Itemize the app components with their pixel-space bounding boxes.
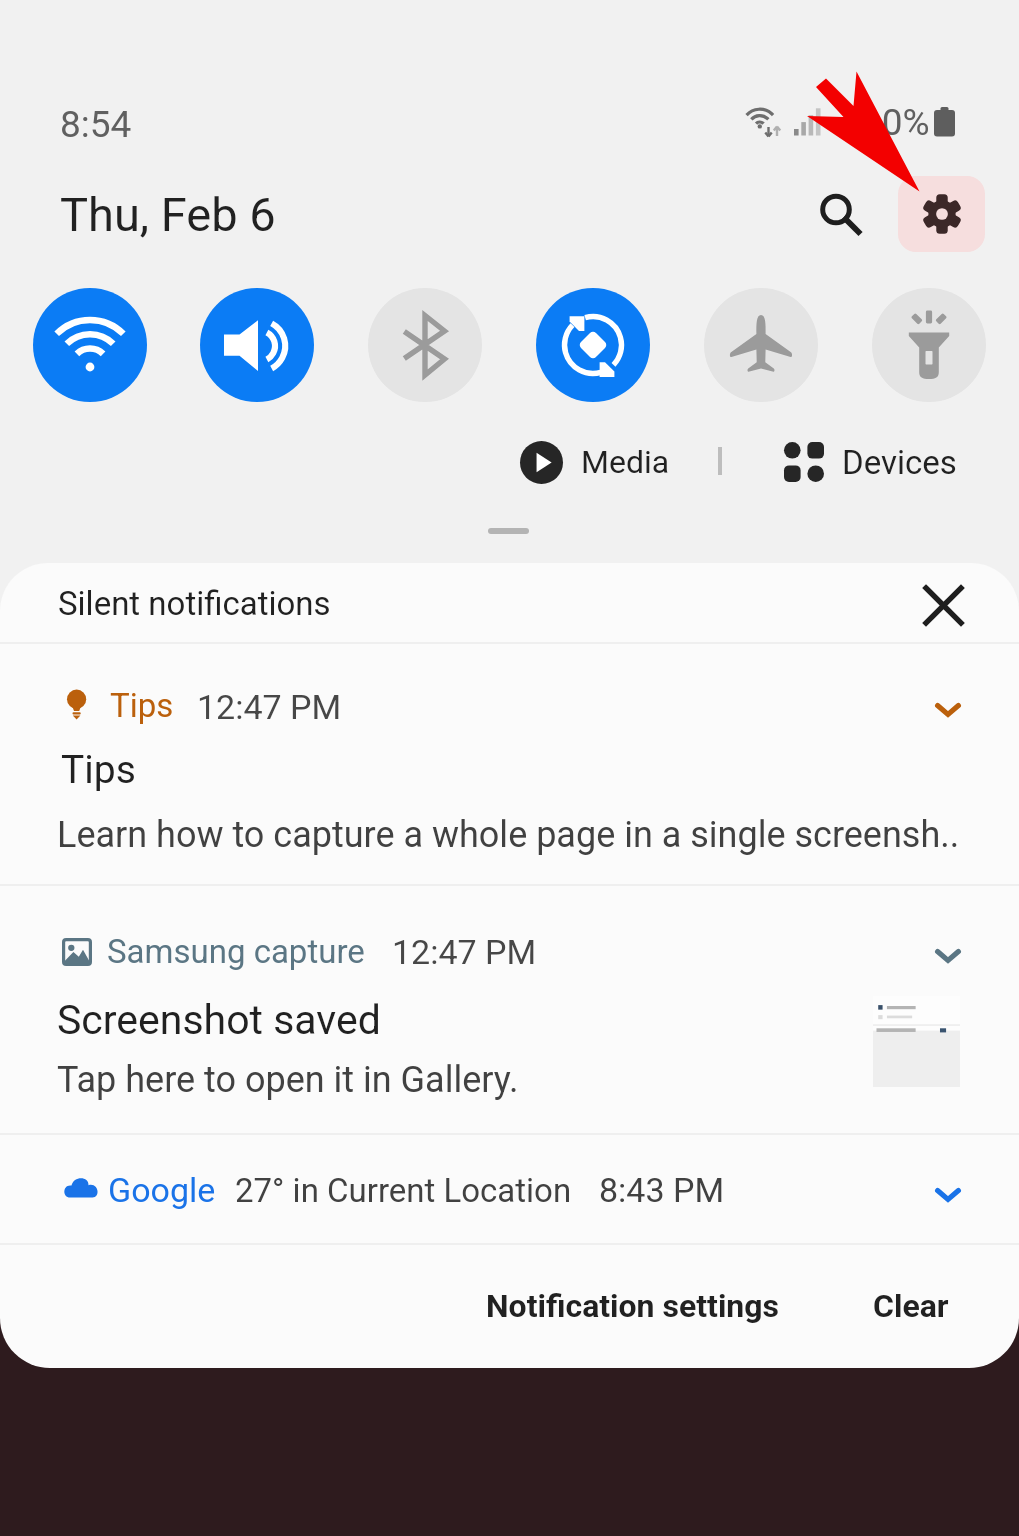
button[interactable]: Auto rotate [536, 288, 650, 402]
button[interactable]: Devices [768, 428, 973, 496]
button[interactable]: Notification settings [462, 1266, 802, 1346]
button[interactable]: Dismiss silent notifications [906, 568, 980, 642]
button[interactable]: Google weather notification [0, 1135, 1019, 1243]
button[interactable]: Expand notification [916, 678, 980, 742]
staticText: 27° in Current Location [235, 1171, 572, 1210]
button[interactable]: Sound [200, 288, 314, 402]
staticText: 12:47 PM [197, 687, 342, 727]
button[interactable]: Settings [898, 176, 985, 252]
button[interactable]: Tips notification [0, 644, 1019, 884]
staticText: 8:54 [60, 103, 132, 146]
button[interactable]: Airplane mode [704, 288, 818, 402]
staticText: Tap here to open it in Gallery. [57, 1059, 519, 1101]
button[interactable]: Search [796, 170, 884, 258]
staticText: Learn how to capture a whole page in a s… [57, 814, 960, 856]
button[interactable]: Flashlight [872, 288, 986, 402]
staticText: 12:47 PM [392, 932, 537, 972]
button[interactable]: Media [504, 428, 686, 496]
button[interactable]: Bluetooth [368, 288, 482, 402]
staticText: Notification settings [486, 1287, 779, 1325]
staticText: Devices [842, 443, 957, 482]
button[interactable]: Expand notification [916, 924, 980, 988]
button[interactable]: Clear [847, 1266, 989, 1346]
staticText: Clear [873, 1287, 949, 1325]
staticText: Screenshot saved [57, 996, 381, 1044]
button[interactable]: Screenshot saved notification [0, 886, 1019, 1133]
staticText: Google [108, 1170, 216, 1210]
staticText: Media [581, 443, 670, 481]
button[interactable]: Expand notification [916, 1163, 980, 1227]
staticText: 8:43 PM [599, 1170, 725, 1210]
staticText: Thu, Feb 6 [60, 187, 276, 242]
button[interactable]: Wi-Fi [33, 288, 147, 402]
staticText: 10% [861, 101, 930, 144]
staticText: Samsung capture [107, 932, 365, 971]
staticText: Tips [61, 747, 136, 793]
staticText: Tips [110, 686, 174, 725]
staticText: Silent notifications [58, 584, 331, 623]
